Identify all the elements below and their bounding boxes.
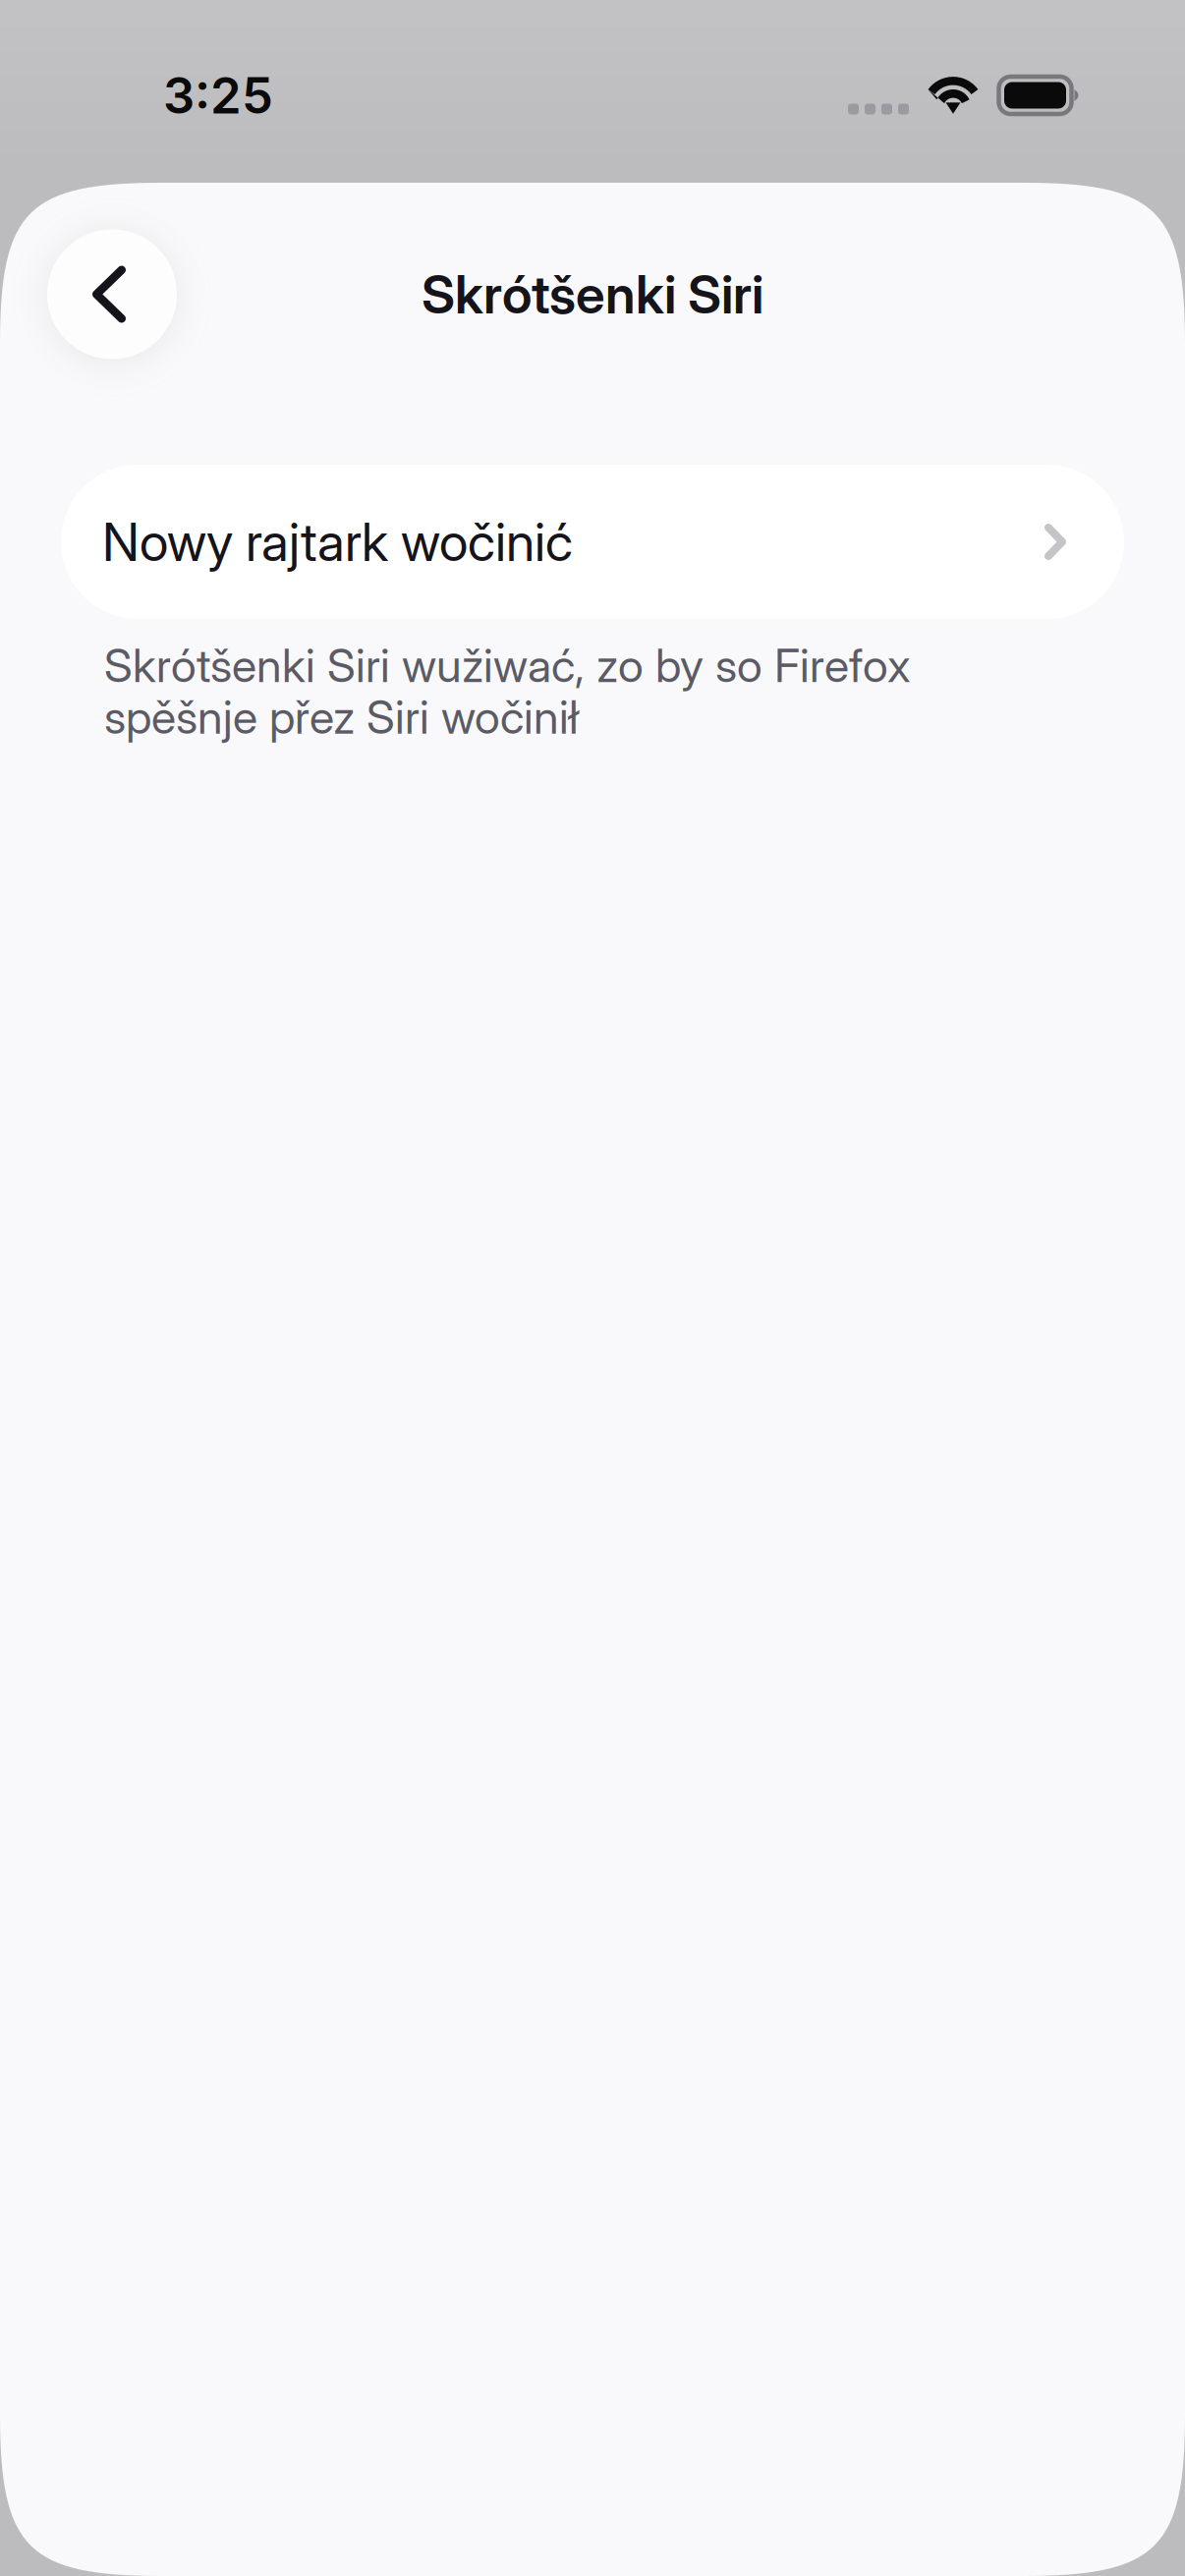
staticText: Skrótšenki Siri: [422, 263, 763, 326]
staticText: Nowy rajtark wočinić: [102, 510, 573, 573]
button[interactable]: Nowy rajtark wočinić: [61, 465, 1124, 619]
staticText: Skrótšenki Siri wužiwać, zo by so Firefo…: [104, 638, 911, 745]
staticText: 3:25: [163, 65, 273, 125]
button[interactable]: Back: [47, 229, 177, 359]
